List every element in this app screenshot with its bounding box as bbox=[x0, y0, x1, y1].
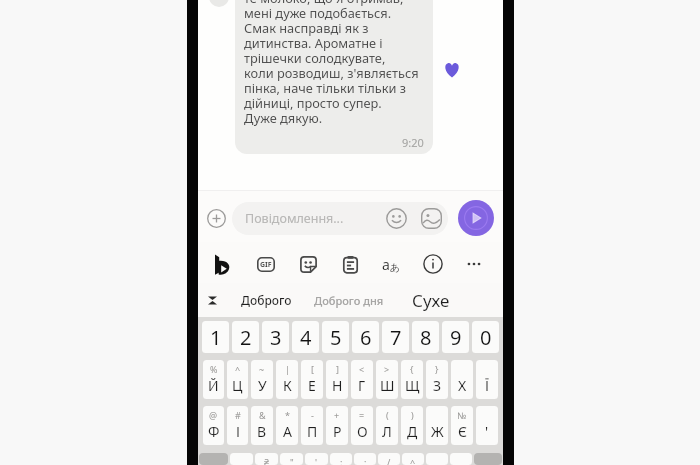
button[interactable]: Close suggestions bbox=[201, 283, 223, 317]
button[interactable]: Доброго bbox=[241, 283, 292, 317]
button[interactable]: % bbox=[203, 360, 224, 399]
staticText: [ bbox=[311, 363, 314, 375]
button[interactable]: Gallery bbox=[418, 205, 444, 231]
button[interactable]: _ bbox=[230, 453, 253, 465]
button[interactable]: 9 bbox=[442, 321, 469, 353]
button[interactable]: Х bbox=[451, 360, 473, 399]
staticText: З bbox=[433, 376, 442, 395]
button[interactable]: < bbox=[351, 360, 373, 399]
button[interactable]: ₴ bbox=[255, 453, 278, 465]
button[interactable]: 4 bbox=[292, 321, 319, 353]
staticText: / bbox=[387, 456, 391, 465]
staticText: Ї bbox=[485, 376, 489, 395]
button[interactable]: ' bbox=[305, 453, 328, 465]
staticText: ) bbox=[411, 409, 414, 421]
staticText: 8 bbox=[420, 324, 432, 351]
button[interactable]: Stickers bbox=[293, 249, 323, 279]
button[interactable]: Clipboard bbox=[335, 249, 365, 279]
button[interactable]: / bbox=[378, 453, 400, 465]
button[interactable]: Translate bbox=[376, 249, 406, 279]
button[interactable]: { bbox=[401, 360, 423, 399]
staticText: 6 bbox=[360, 324, 372, 351]
button[interactable]: № bbox=[451, 406, 473, 445]
staticText: # bbox=[235, 409, 241, 421]
button[interactable]: Info bbox=[418, 249, 448, 279]
staticText: І bbox=[236, 422, 240, 441]
staticText: ' bbox=[315, 456, 318, 465]
staticText: П bbox=[307, 422, 318, 441]
button[interactable]: Add attachment bbox=[203, 205, 229, 231]
button[interactable]: ~ bbox=[251, 360, 273, 399]
staticText: 7 bbox=[390, 324, 402, 351]
staticText: Є bbox=[458, 422, 467, 441]
staticText: 9 bbox=[450, 324, 462, 351]
staticText: > bbox=[384, 363, 390, 375]
button[interactable]: ^ bbox=[402, 453, 424, 465]
staticText: < bbox=[359, 363, 365, 375]
button[interactable] bbox=[426, 453, 448, 465]
staticText: Щ bbox=[405, 376, 420, 395]
button[interactable]: GIF bbox=[251, 249, 281, 279]
staticText: Ц bbox=[232, 376, 243, 395]
staticText: Д bbox=[407, 422, 418, 441]
button[interactable]: & bbox=[251, 406, 273, 445]
button[interactable] bbox=[450, 453, 472, 465]
button[interactable]: + bbox=[326, 406, 348, 445]
staticText: 1 bbox=[210, 324, 222, 351]
button[interactable]: 5 bbox=[322, 321, 349, 353]
button[interactable]: ' bbox=[476, 406, 498, 445]
button[interactable]: " bbox=[280, 453, 303, 465]
button[interactable]: ) bbox=[401, 406, 423, 445]
staticText: ; bbox=[364, 456, 367, 465]
button[interactable]: Повідомлення... bbox=[232, 202, 448, 235]
button[interactable]: ; bbox=[354, 453, 376, 465]
staticText: те молоко, що я отримав, мені дуже подоб… bbox=[244, 0, 419, 127]
button[interactable]: Backspace bbox=[474, 453, 502, 465]
staticText: * bbox=[285, 409, 290, 421]
button[interactable]: 3 bbox=[262, 321, 289, 353]
button[interactable]: Сухе bbox=[412, 283, 450, 317]
button[interactable]: Доброго дня bbox=[314, 283, 384, 317]
staticText: " bbox=[290, 456, 294, 465]
button[interactable]: Shift bbox=[199, 453, 228, 465]
button[interactable]: 0 bbox=[472, 321, 499, 353]
staticText: 9:20 bbox=[402, 135, 424, 150]
staticText: + bbox=[334, 409, 340, 421]
staticText: Х bbox=[458, 376, 467, 395]
button[interactable]: # bbox=[227, 406, 248, 445]
button[interactable]: More options bbox=[459, 249, 489, 279]
staticText: Ф bbox=[208, 422, 220, 441]
staticText: 3 bbox=[270, 324, 282, 351]
staticText: К bbox=[283, 376, 292, 395]
button[interactable]: 2 bbox=[232, 321, 259, 353]
staticText: ₴ bbox=[264, 456, 269, 465]
button[interactable]: = bbox=[351, 406, 373, 445]
staticText: Е bbox=[308, 376, 316, 395]
button[interactable]: 7 bbox=[382, 321, 409, 353]
staticText: Доброго дня bbox=[314, 293, 384, 308]
staticText: 0 bbox=[480, 324, 492, 351]
button[interactable]: Bing search bbox=[207, 249, 237, 279]
button[interactable]: @ bbox=[203, 406, 224, 445]
staticText: О bbox=[357, 422, 368, 441]
button[interactable]: * bbox=[276, 406, 298, 445]
staticText: Н bbox=[332, 376, 343, 395]
button[interactable]: Send voice message bbox=[458, 200, 494, 236]
button[interactable]: [ bbox=[301, 360, 323, 399]
button[interactable]: 6 bbox=[352, 321, 379, 353]
button[interactable]: Emoji bbox=[383, 205, 409, 231]
button[interactable]: 1 bbox=[202, 321, 229, 353]
button[interactable]: Ж bbox=[426, 406, 448, 445]
button[interactable]: Ї bbox=[476, 360, 498, 399]
button[interactable]: ^ bbox=[227, 360, 248, 399]
button[interactable]: : bbox=[330, 453, 352, 465]
button[interactable]: } bbox=[426, 360, 448, 399]
staticText: 4 bbox=[300, 324, 312, 351]
button[interactable]: ( bbox=[376, 406, 398, 445]
staticText: 2 bbox=[240, 324, 252, 351]
button[interactable]: 8 bbox=[412, 321, 439, 353]
button[interactable]: > bbox=[376, 360, 398, 399]
button[interactable]: | bbox=[276, 360, 298, 399]
button[interactable]: ] bbox=[326, 360, 348, 399]
button[interactable]: - bbox=[301, 406, 323, 445]
